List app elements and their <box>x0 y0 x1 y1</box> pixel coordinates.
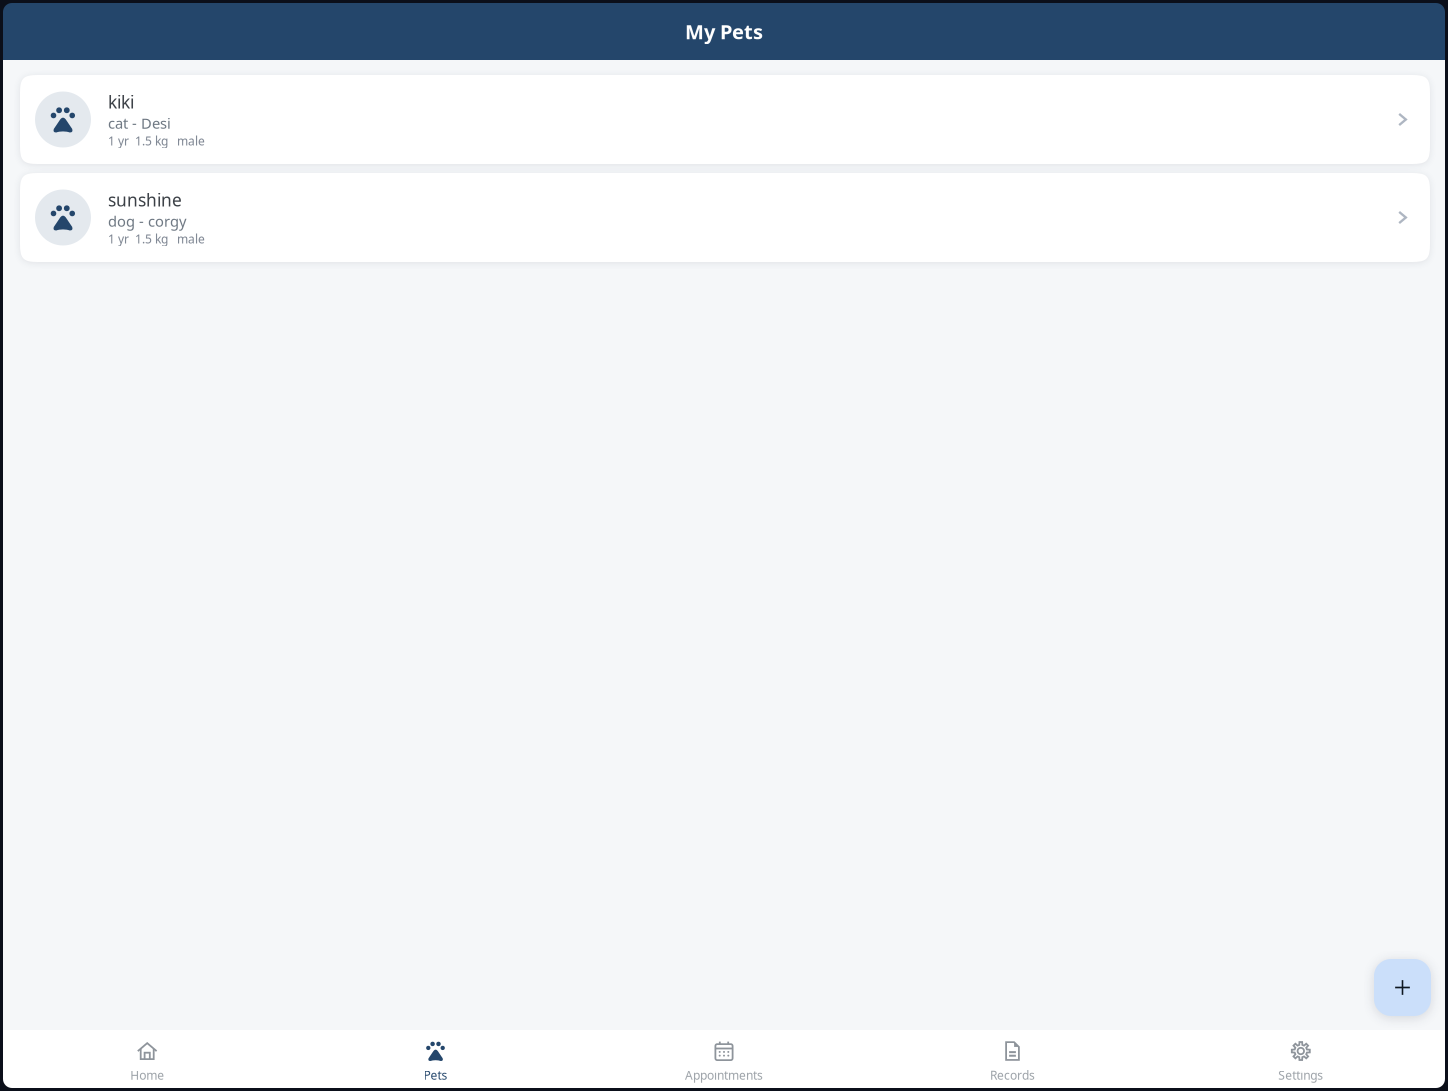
staticText: male <box>177 133 205 149</box>
staticText: Pets <box>424 1067 448 1083</box>
button[interactable]: Pets <box>291 1030 580 1088</box>
staticText: 1.5 kg <box>135 231 168 247</box>
staticText: kiki <box>108 90 134 113</box>
staticText: 1.5 kg <box>135 133 168 149</box>
button[interactable]: sunshine <box>20 173 1430 262</box>
button[interactable]: Add pet <box>1374 959 1431 1016</box>
staticText: cat - Desi <box>108 113 171 133</box>
staticText: sunshine <box>108 188 182 211</box>
button[interactable]: Settings <box>1157 1030 1445 1088</box>
staticText: male <box>177 231 205 247</box>
staticText: Appointments <box>685 1067 763 1083</box>
staticText: 1 yr <box>108 231 129 247</box>
staticText: My Pets <box>685 18 763 45</box>
staticText: 1 yr <box>108 133 129 149</box>
button[interactable]: kiki <box>20 75 1430 164</box>
staticText: dog - corgy <box>108 211 186 231</box>
staticText: Home <box>130 1067 164 1083</box>
staticText: Records <box>990 1067 1035 1083</box>
button[interactable]: Records <box>868 1030 1157 1088</box>
staticText: Settings <box>1278 1067 1323 1083</box>
button[interactable]: Home <box>3 1030 291 1088</box>
button[interactable]: Appointments <box>580 1030 868 1088</box>
